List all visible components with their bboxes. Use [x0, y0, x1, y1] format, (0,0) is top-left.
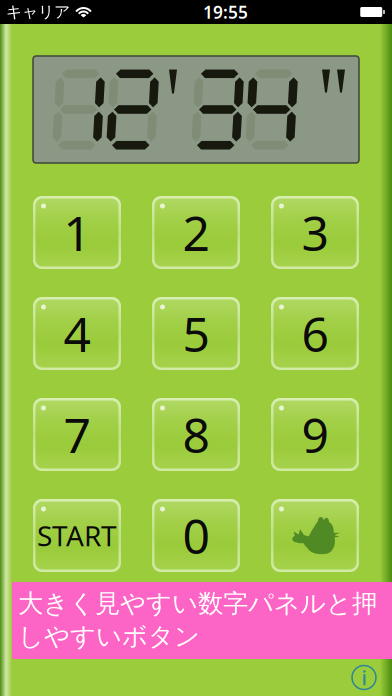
staticText: 8: [182, 403, 209, 466]
staticText: 1: [63, 201, 90, 264]
button[interactable]: Information: [352, 665, 376, 689]
staticText: 7: [63, 403, 90, 466]
staticText: 6: [301, 302, 328, 365]
staticText: 19:55: [203, 0, 248, 23]
button[interactable]: 9: [271, 398, 359, 471]
staticText: i: [361, 664, 366, 691]
staticText: 2: [182, 201, 209, 264]
staticText: しやすいボタン: [18, 621, 200, 652]
button[interactable]: 1: [33, 196, 121, 269]
button[interactable]: START: [33, 499, 121, 572]
button[interactable]: [271, 499, 359, 572]
button[interactable]: 6: [271, 297, 359, 370]
staticText: 0: [182, 504, 209, 567]
staticText: 5: [182, 302, 209, 365]
button[interactable]: 4: [33, 297, 121, 370]
button[interactable]: 3: [271, 196, 359, 269]
staticText: 大きく見やすい数字パネルと押: [18, 588, 377, 619]
staticText: START: [37, 517, 117, 554]
button[interactable]: 8: [152, 398, 240, 471]
button[interactable]: 2: [152, 196, 240, 269]
button[interactable]: 5: [152, 297, 240, 370]
button[interactable]: 0: [152, 499, 240, 572]
button[interactable]: 7: [33, 398, 121, 471]
staticText: 4: [63, 302, 90, 365]
staticText: 9: [301, 403, 328, 466]
staticText: 3: [301, 201, 328, 264]
staticText: キャリア: [6, 2, 70, 22]
